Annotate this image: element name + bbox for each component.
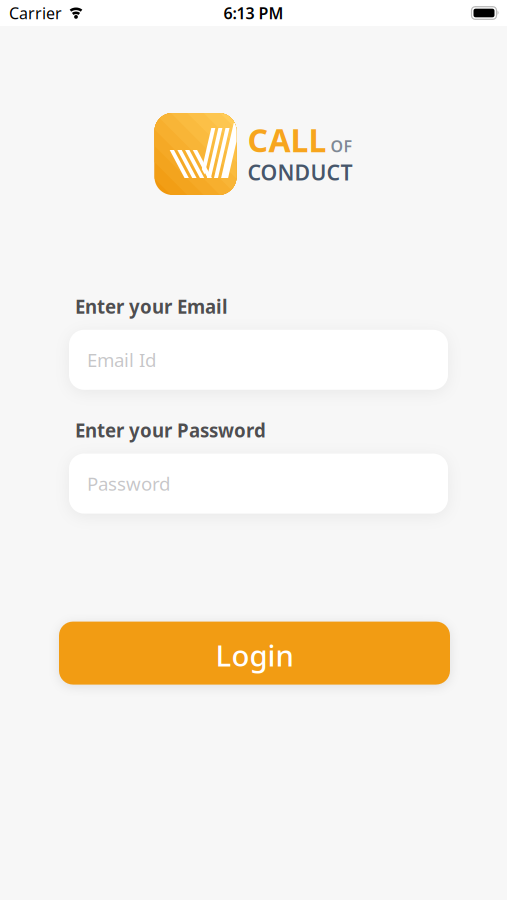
staticText: 6:13 PM [223,2,283,24]
button[interactable]: Login [59,622,450,685]
staticText: Enter your Email [75,294,228,319]
staticText: Enter your Password [75,418,266,443]
button[interactable]: Password [69,454,448,514]
staticText: OF [330,135,352,157]
staticText: Carrier [9,2,62,24]
staticText: Password [87,471,170,496]
staticText: CONDUCT [247,158,352,186]
staticText: Email Id [87,347,156,372]
staticText: CALL [247,119,326,161]
button[interactable]: Email Id [69,330,448,390]
staticText: Login [215,636,293,675]
